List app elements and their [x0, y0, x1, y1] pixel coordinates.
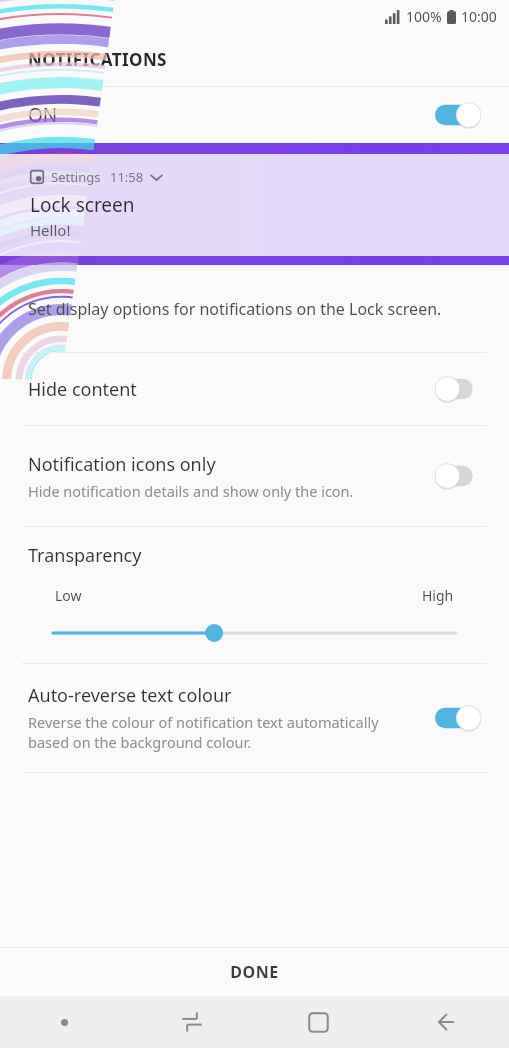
- button[interactable]: Home: [255, 996, 382, 1048]
- button[interactable]: Hide content: [0, 353, 509, 425]
- staticText: Hide content: [28, 377, 137, 402]
- staticText: Settings: [51, 168, 101, 186]
- button[interactable]: Back: [382, 996, 509, 1048]
- staticText: Notification icons only: [28, 452, 216, 477]
- button[interactable]: Recent apps: [128, 996, 255, 1048]
- staticText: ON: [28, 102, 58, 128]
- button[interactable]: Auto-reverse text colour: [0, 664, 509, 772]
- button[interactable]: [0, 621, 509, 645]
- staticText: Hide notification details and show only …: [28, 481, 354, 501]
- staticText: Low: [55, 586, 82, 605]
- staticText: Auto-reverse text colour: [28, 683, 232, 708]
- staticText: 100%: [406, 7, 442, 26]
- staticText: Reverse the colour of notification text …: [28, 712, 411, 753]
- staticText: High: [422, 586, 454, 605]
- button[interactable]: Show keyboard: [0, 996, 128, 1048]
- staticText: Lock screen: [30, 192, 135, 218]
- staticText: Set display options for notifications on…: [28, 298, 442, 320]
- staticText: DONE: [230, 961, 279, 983]
- button[interactable]: Notification icons only: [0, 426, 509, 526]
- staticText: Transparency: [28, 543, 142, 568]
- staticText: Hello!: [30, 220, 71, 240]
- button[interactable]: DONE: [0, 948, 509, 996]
- staticText: NOTIFICATIONS: [28, 48, 167, 71]
- button[interactable]: ON: [0, 87, 509, 143]
- staticText: 10:00: [461, 7, 497, 26]
- staticText: 11:58: [110, 168, 144, 186]
